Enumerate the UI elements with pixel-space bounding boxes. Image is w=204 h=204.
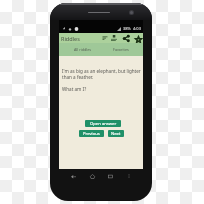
staticText: What am I? [62, 86, 87, 92]
button[interactable]: Share [122, 33, 131, 43]
staticText: Riddles [61, 35, 80, 42]
button[interactable]: Sort [100, 33, 109, 43]
staticText: I'm as big as an elephant, but lighter t… [62, 68, 141, 80]
button[interactable]: Next [108, 130, 124, 137]
staticText: 4:03 [133, 26, 141, 31]
staticText: Favorites [113, 47, 129, 52]
button[interactable]: Text size [109, 33, 118, 43]
staticText: 38% [123, 26, 131, 31]
button[interactable]: Back [68, 171, 78, 181]
button[interactable]: Open answer [85, 120, 121, 127]
button[interactable]: Menu [124, 171, 134, 181]
button[interactable]: Recent apps [105, 171, 115, 181]
button[interactable]: Favorite [134, 34, 143, 44]
staticText: All riddles [74, 47, 92, 52]
button[interactable]: Favorites [105, 43, 136, 56]
button[interactable]: Home [87, 171, 97, 181]
button[interactable]: Previous [79, 130, 104, 137]
button[interactable]: All riddles [67, 43, 99, 56]
staticText: Previous [83, 131, 100, 137]
staticText: Next [111, 131, 121, 137]
staticText: Open answer [90, 121, 117, 127]
